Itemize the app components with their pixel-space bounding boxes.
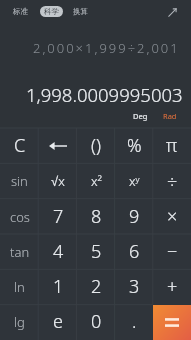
staticText: C (14, 133, 26, 158)
button[interactable]: Backspace (39, 128, 77, 164)
button[interactable]: π (153, 128, 191, 164)
staticText: 2,000×1,999÷2,001 (33, 39, 180, 57)
button[interactable]: . (115, 305, 153, 340)
button[interactable]: 2 (77, 270, 115, 305)
button[interactable]: sin (0, 164, 39, 200)
staticText: + (167, 274, 178, 299)
staticText: 7 (53, 204, 64, 229)
staticText: xʸ (129, 172, 140, 190)
button[interactable]: x² (77, 164, 115, 200)
staticText: 5 (91, 239, 102, 264)
staticText: sin (11, 172, 28, 190)
other: Backspace (46, 139, 70, 153)
button[interactable]: × (153, 200, 191, 235)
button[interactable]: − (153, 235, 191, 270)
button[interactable]: 1 (39, 270, 77, 305)
button[interactable]: √x (39, 164, 77, 200)
staticText: √x (51, 172, 65, 190)
staticText: ÷ (167, 169, 178, 194)
staticText: lg (14, 313, 25, 331)
staticText: 4 (53, 239, 64, 264)
staticText: 8 (91, 204, 102, 229)
button[interactable]: 换算 (70, 5, 91, 18)
staticText: Deg (133, 111, 148, 121)
button[interactable]: Expand (163, 3, 182, 22)
button[interactable]: 0 (77, 305, 115, 340)
button[interactable]: 5 (77, 235, 115, 270)
staticText: 1,998.0009995003 (26, 82, 183, 107)
button[interactable]: 4 (39, 235, 77, 270)
staticText: 1 (53, 274, 64, 299)
button[interactable]: 科学 (40, 6, 63, 17)
staticText: % (127, 133, 142, 158)
staticText: ln (14, 278, 25, 296)
staticText: 换算 (73, 7, 88, 16)
button[interactable]: 6 (115, 235, 153, 270)
button[interactable]: Deg (131, 110, 150, 122)
staticText: x² (91, 172, 102, 190)
button[interactable]: C (0, 128, 39, 164)
button[interactable]: % (115, 128, 153, 164)
staticText: e (53, 309, 63, 334)
staticText: cos (10, 208, 30, 226)
button[interactable]: xʸ (115, 164, 153, 200)
button[interactable]: + (153, 270, 191, 305)
button[interactable]: cos (0, 200, 39, 235)
button[interactable]: 9 (115, 200, 153, 235)
staticText: 2 (91, 274, 102, 299)
staticText: − (167, 239, 178, 264)
staticText: . (132, 309, 137, 334)
staticText: 9 (129, 204, 140, 229)
button[interactable]: 7 (39, 200, 77, 235)
staticText: 0 (91, 309, 102, 334)
staticText: tan (10, 243, 30, 261)
button[interactable]: () (77, 128, 115, 164)
button[interactable]: lg (0, 305, 39, 340)
button[interactable]: ln (0, 270, 39, 305)
button[interactable]: tan (0, 235, 39, 270)
staticText: 科学 (44, 7, 59, 16)
button[interactable]: e (39, 305, 77, 340)
button[interactable]: ÷ (153, 164, 191, 200)
staticText: 标准 (13, 7, 28, 16)
button[interactable]: 标准 (10, 5, 31, 18)
button[interactable]: 8 (77, 200, 115, 235)
staticText: × (167, 204, 178, 229)
button[interactable]: Equals (153, 305, 191, 340)
button[interactable]: Rad (161, 110, 179, 122)
staticText: π (166, 133, 178, 158)
staticText: 6 (129, 239, 140, 264)
staticText: 3 (129, 274, 140, 299)
button[interactable]: 3 (115, 270, 153, 305)
staticText: Rad (163, 111, 177, 121)
staticText: () (91, 133, 101, 158)
